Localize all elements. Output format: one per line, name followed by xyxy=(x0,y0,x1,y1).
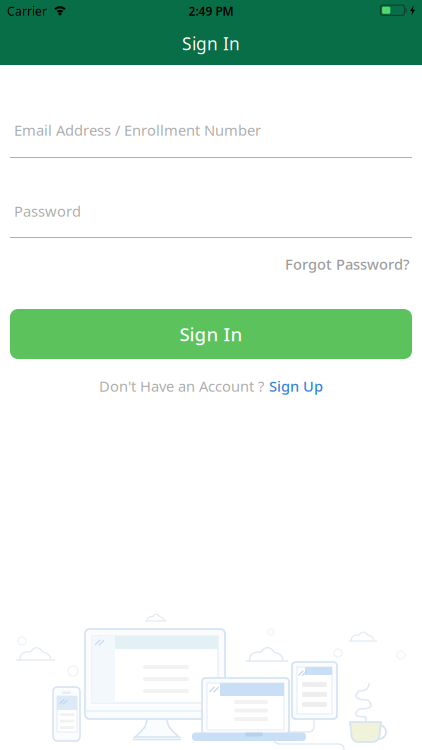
button[interactable]: Don't Have an Account ? xyxy=(99,376,323,396)
button[interactable]: Email Address / Enrollment Number xyxy=(0,120,422,158)
staticText: Forgot Password? xyxy=(285,254,410,274)
button[interactable]: Forgot Password? xyxy=(0,254,422,274)
staticText: Carrier xyxy=(7,3,47,19)
staticText: Don't Have an Account ? xyxy=(99,376,264,396)
staticText: Sign In xyxy=(182,32,240,55)
staticText: Sign In xyxy=(179,322,242,346)
staticText: Email Address / Enrollment Number xyxy=(14,120,261,140)
button[interactable]: Sign In xyxy=(10,309,412,359)
staticText: Password xyxy=(14,201,81,221)
button[interactable]: Password xyxy=(0,201,422,238)
staticText: Sign Up xyxy=(269,376,323,396)
staticText: 2:49 PM xyxy=(188,3,233,19)
